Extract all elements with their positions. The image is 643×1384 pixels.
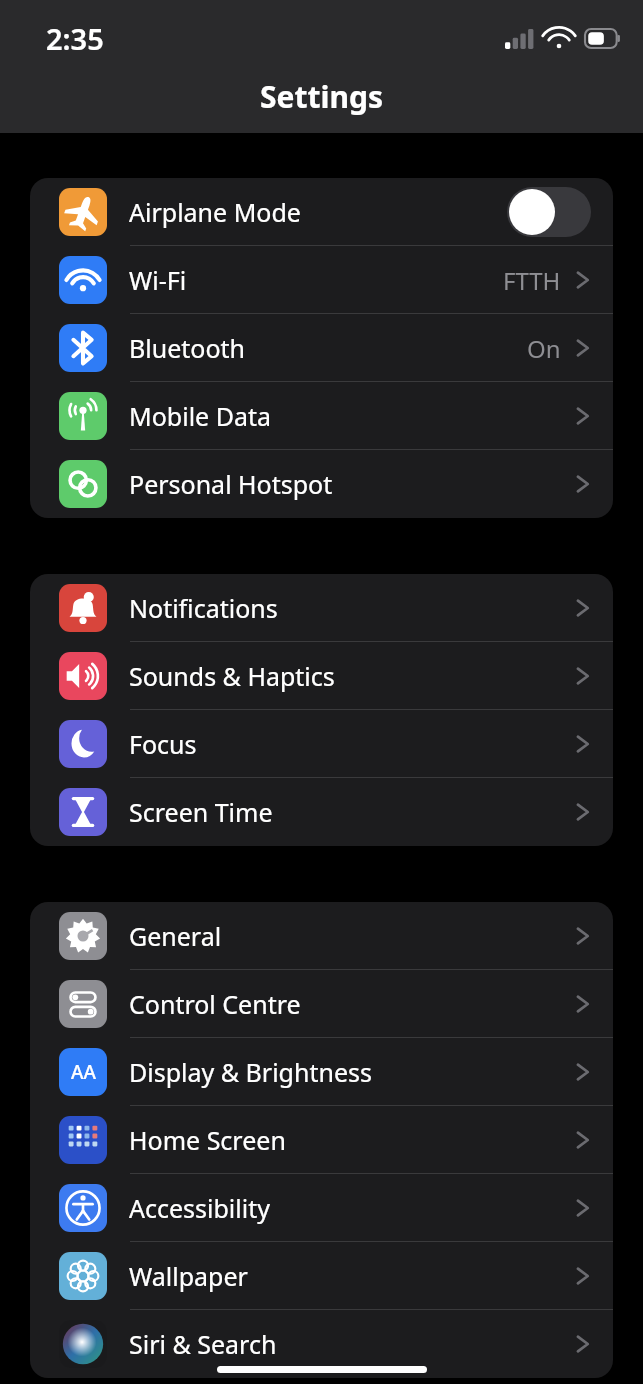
staticText: FTTH	[503, 264, 561, 297]
staticText: Settings	[260, 76, 383, 117]
staticText: On	[527, 332, 561, 365]
staticText: AA	[71, 1059, 96, 1085]
staticText: Accessibility	[129, 1191, 270, 1225]
staticText: Airplane Mode	[129, 195, 301, 229]
button[interactable]: Bluetooth	[30, 314, 613, 382]
button[interactable]: Accessibility	[30, 1174, 613, 1242]
staticText: Personal Hotspot	[129, 467, 333, 501]
button[interactable]: Siri & Search	[30, 1310, 613, 1378]
button[interactable]: AA	[30, 1038, 613, 1106]
button[interactable]: Wallpaper	[30, 1242, 613, 1310]
button[interactable]: Focus	[30, 710, 613, 778]
staticText: Sounds & Haptics	[129, 659, 335, 693]
staticText: Wallpaper	[129, 1259, 248, 1293]
button[interactable]: General	[30, 902, 613, 970]
button[interactable]: Control Centre	[30, 970, 613, 1038]
staticText: Control Centre	[129, 987, 301, 1021]
staticText: 2:35	[46, 19, 104, 58]
staticText: Wi-Fi	[129, 263, 187, 297]
button[interactable]: Personal Hotspot	[30, 450, 613, 518]
staticText: Focus	[129, 727, 197, 761]
staticText: Notifications	[129, 591, 278, 625]
button[interactable]: Screen Time	[30, 778, 613, 846]
staticText: Home Screen	[129, 1123, 286, 1157]
staticText: Mobile Data	[129, 399, 272, 433]
staticText: Display & Brightness	[129, 1055, 372, 1089]
button[interactable]: Notifications	[30, 574, 613, 642]
button[interactable]: Airplane Mode toggle	[507, 187, 591, 237]
staticText: Screen Time	[129, 795, 273, 829]
staticText: General	[129, 919, 222, 953]
button[interactable]: Home Screen	[30, 1106, 613, 1174]
button[interactable]: Wi-Fi	[30, 246, 613, 314]
staticText: Bluetooth	[129, 331, 246, 365]
button[interactable]: Airplane Mode	[30, 178, 613, 246]
button[interactable]: Sounds & Haptics	[30, 642, 613, 710]
button[interactable]: Mobile Data	[30, 382, 613, 450]
staticText: Siri & Search	[129, 1327, 277, 1361]
